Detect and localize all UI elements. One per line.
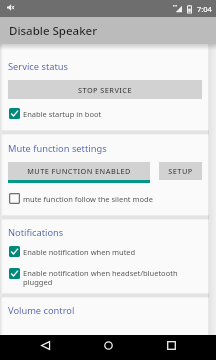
- staticText: STOP SERVICE: [78, 85, 132, 95]
- button[interactable]: STOP SERVICE: [8, 80, 202, 99]
- button[interactable]: Recent apps: [159, 335, 183, 360]
- staticText: Disable Speaker: [9, 23, 98, 39]
- staticText: 7:04: [197, 4, 212, 14]
- button[interactable]: Service status: [8, 60, 69, 73]
- button[interactable]: Home: [96, 335, 120, 360]
- button[interactable]: Enable notification when headset/bluetoo…: [9, 268, 202, 287]
- button[interactable]: Volume control: [8, 304, 75, 317]
- button[interactable]: SETUP: [159, 162, 202, 180]
- staticText: MUTE FUNCTION ENABLED: [27, 166, 131, 176]
- button[interactable]: Enable notification when muted: [9, 246, 202, 257]
- button[interactable]: Enable startup in boot: [9, 108, 202, 119]
- button[interactable]: MUTE FUNCTION ENABLED: [8, 162, 150, 183]
- button[interactable]: Back: [33, 335, 57, 360]
- staticText: Enable notification when headset/bluetoo…: [23, 268, 202, 287]
- button[interactable]: mute function follow the silent mode: [9, 193, 202, 204]
- staticText: Enable startup in boot: [23, 109, 102, 119]
- staticText: Enable notification when muted: [23, 247, 136, 257]
- staticText: SETUP: [168, 166, 193, 176]
- button[interactable]: Notifications: [8, 226, 64, 239]
- staticText: mute function follow the silent mode: [23, 194, 153, 204]
- button[interactable]: Mute function settings: [8, 142, 107, 155]
